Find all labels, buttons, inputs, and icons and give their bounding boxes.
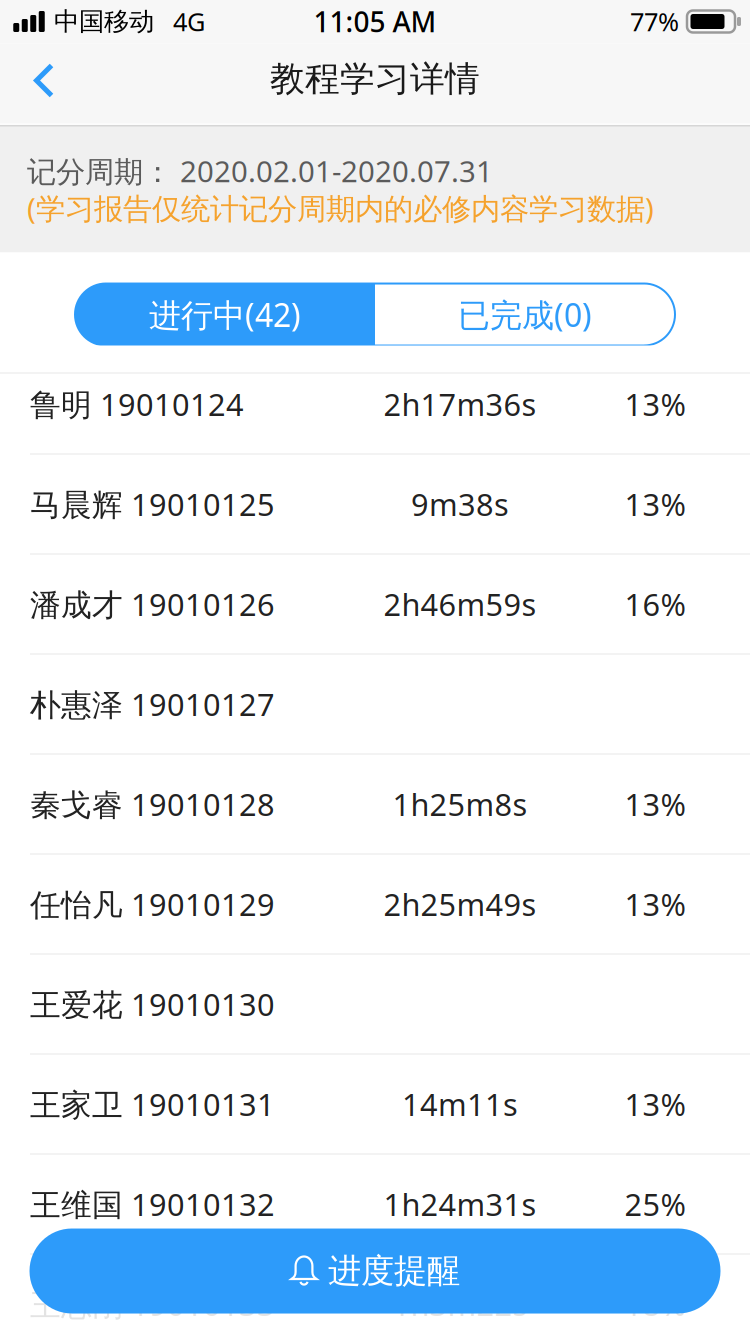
button[interactable]: 已完成(0)	[375, 283, 675, 345]
staticText: 16%	[624, 584, 685, 624]
staticText: 13%	[624, 384, 685, 424]
staticText: 1h24m31s	[383, 1184, 536, 1224]
button[interactable]: 鲁明 19010124	[0, 354, 750, 454]
staticText: 2h25m49s	[383, 884, 536, 924]
staticText: 1h3m22s	[392, 1284, 527, 1324]
staticText: 马晨辉 19010125	[30, 484, 275, 524]
button[interactable]: 王爱花 19010130	[0, 954, 750, 1054]
staticText: 14m11s	[402, 1084, 518, 1124]
staticText: 1h25m8s	[392, 784, 527, 824]
staticText: 已完成(0)	[458, 293, 592, 336]
button[interactable]: 王志刚 19010133	[0, 1254, 750, 1334]
staticText: (学习报告仅统计记分周期内的必修内容学习数据)	[27, 188, 654, 227]
staticText: 13%	[624, 884, 685, 924]
staticText: 77%	[630, 5, 679, 38]
button[interactable]: 潘成才 19010126	[0, 554, 750, 654]
staticText: 任怡凡 19010129	[30, 884, 275, 924]
staticText: 18%	[624, 1284, 685, 1324]
button[interactable]: 马晨辉 19010125	[0, 454, 750, 554]
button[interactable]: 王维国 19010132	[0, 1154, 750, 1254]
staticText: 11:05 AM	[313, 3, 436, 40]
button[interactable]: 秦戈睿 19010128	[0, 754, 750, 854]
button[interactable]: 进度提醒	[29, 1228, 720, 1313]
staticText: 王维国 19010132	[30, 1184, 275, 1224]
staticText: 25%	[624, 1184, 685, 1224]
staticText: 13%	[624, 784, 685, 824]
staticText: 记分周期： 2020.02.01-2020.07.31	[27, 151, 493, 190]
staticText: 13%	[624, 1084, 685, 1124]
staticText: 2h17m36s	[383, 384, 536, 424]
staticText: 王爱花 19010130	[30, 984, 275, 1024]
button[interactable]: Back	[0, 42, 80, 125]
staticText: 2h46m59s	[383, 584, 536, 624]
staticText: 13%	[624, 484, 685, 524]
staticText: 王志刚 19010133	[30, 1284, 275, 1324]
staticText: 潘成才 19010126	[30, 584, 275, 624]
button[interactable]: 进行中(42)	[75, 283, 375, 345]
staticText: 中国移动	[54, 6, 154, 37]
staticText: 9m38s	[411, 484, 509, 524]
button[interactable]: 任怡凡 19010129	[0, 854, 750, 954]
staticText: 秦戈睿 19010128	[30, 784, 275, 824]
staticText: 鲁明 19010124	[30, 384, 244, 424]
staticText: 教程学习详情	[270, 58, 480, 100]
button[interactable]: 王家卫 19010131	[0, 1054, 750, 1154]
staticText: 王家卫 19010131	[30, 1084, 275, 1124]
staticText: 进度提醒	[328, 1250, 460, 1291]
staticText: 4G	[173, 5, 205, 38]
button[interactable]: 朴惠泽 19010127	[0, 654, 750, 754]
staticText: 朴惠泽 19010127	[30, 684, 275, 724]
staticText: 进行中(42)	[149, 293, 301, 336]
